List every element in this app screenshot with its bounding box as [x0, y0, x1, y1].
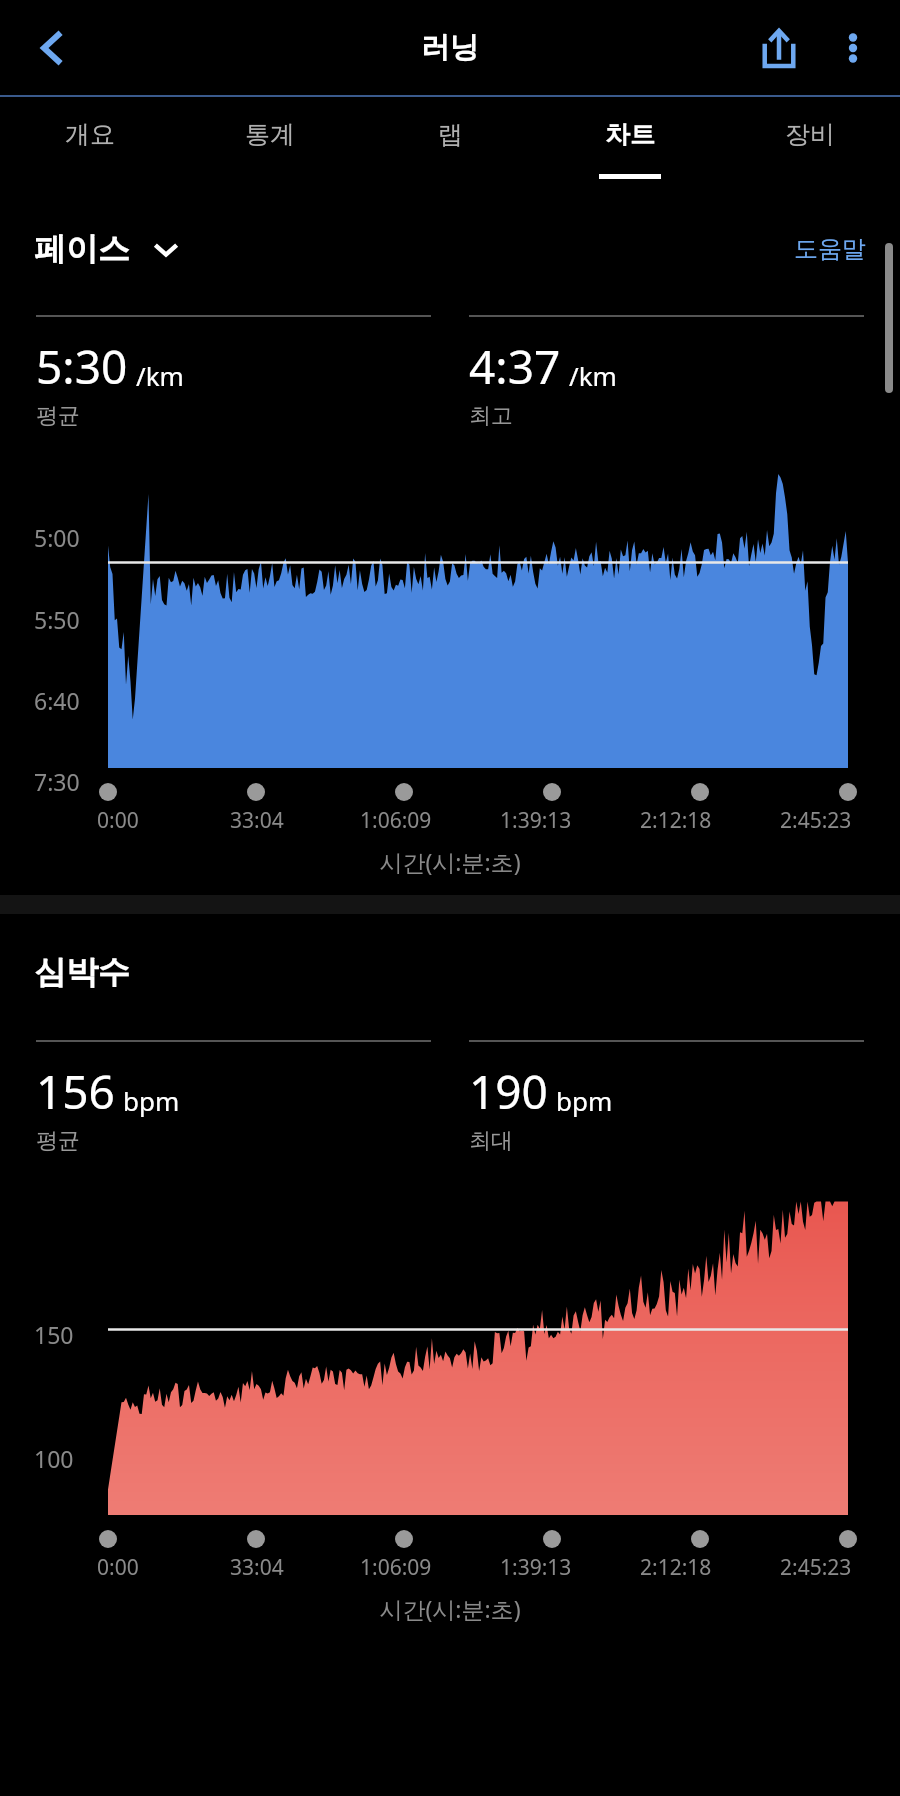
- staticText: 0:00: [97, 806, 139, 835]
- staticText: 시간(시:분:초): [0, 846, 900, 877]
- staticText: 최대: [469, 1127, 513, 1155]
- staticText: 190: [469, 1060, 548, 1123]
- staticText: bpm: [556, 1083, 613, 1118]
- staticText: 5:50: [34, 604, 80, 635]
- staticText: 2:45:23: [780, 806, 852, 835]
- staticText: 개요: [65, 119, 115, 150]
- staticText: 1:06:09: [360, 1553, 432, 1582]
- staticText: 2:45:23: [780, 1553, 852, 1582]
- staticText: 통계: [245, 119, 295, 150]
- staticText: 5:00: [34, 522, 80, 553]
- staticText: 6:40: [34, 685, 80, 716]
- staticText: /km: [136, 358, 184, 393]
- staticText: 5:30: [36, 335, 128, 398]
- staticText: 150: [34, 1319, 74, 1350]
- staticText: 1:39:13: [500, 1553, 572, 1582]
- staticText: 차트: [605, 119, 655, 150]
- staticText: 심박수: [34, 952, 130, 992]
- staticText: bpm: [123, 1083, 180, 1118]
- staticText: 최고: [469, 402, 513, 430]
- button[interactable]: 랩: [360, 97, 540, 207]
- staticText: 7:30: [34, 766, 80, 797]
- staticText: 100: [34, 1443, 74, 1474]
- button[interactable]: Share: [742, 11, 816, 85]
- staticText: 러닝: [421, 29, 479, 66]
- button[interactable]: 장비: [720, 97, 900, 207]
- button[interactable]: 통계: [180, 97, 360, 207]
- staticText: 평균: [36, 1127, 80, 1155]
- button[interactable]: 개요: [0, 97, 180, 207]
- staticText: 4:37: [469, 335, 561, 398]
- staticText: 페이스: [34, 229, 130, 269]
- staticText: 1:06:09: [360, 806, 432, 835]
- button[interactable]: Back: [16, 12, 88, 84]
- button[interactable]: 차트: [540, 97, 720, 207]
- button[interactable]: 페이스: [34, 229, 180, 269]
- staticText: /km: [569, 358, 617, 393]
- staticText: 33:04: [230, 1553, 284, 1582]
- staticText: 1:39:13: [500, 806, 572, 835]
- button[interactable]: 도움말: [794, 234, 866, 264]
- staticText: 장비: [785, 119, 835, 150]
- staticText: 33:04: [230, 806, 284, 835]
- staticText: 0:00: [97, 1553, 139, 1582]
- staticText: 시간(시:분:초): [0, 1593, 900, 1624]
- staticText: 도움말: [794, 234, 866, 264]
- staticText: 랩: [438, 119, 463, 150]
- staticText: 156: [36, 1060, 115, 1123]
- staticText: 평균: [36, 402, 80, 430]
- staticText: 2:12:18: [640, 1553, 712, 1582]
- button[interactable]: More options: [816, 11, 890, 85]
- staticText: 2:12:18: [640, 806, 712, 835]
